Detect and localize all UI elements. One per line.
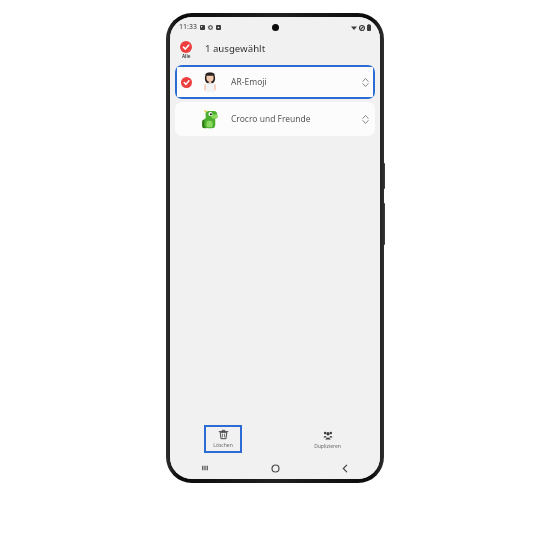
button[interactable]: Crocro und Freunde xyxy=(175,102,375,136)
button[interactable]: Alle auswählen xyxy=(179,41,193,59)
button[interactable]: AR-Emoji xyxy=(175,65,375,99)
staticText: AR-Emoji xyxy=(231,76,267,88)
staticText: 11:33 xyxy=(179,22,197,32)
button[interactable]: Letzte Apps xyxy=(170,457,240,479)
staticText: Alle xyxy=(182,53,191,59)
staticText: Löschen xyxy=(213,442,233,449)
button[interactable]: Duplizieren xyxy=(305,425,350,454)
staticText: 1 ausgewählt xyxy=(205,42,266,55)
staticText: Crocro und Freunde xyxy=(231,113,311,125)
button[interactable]: Löschen xyxy=(204,425,242,453)
button[interactable]: Startbildschirm xyxy=(240,457,310,479)
button[interactable]: Zurück xyxy=(310,457,380,479)
staticText: Duplizieren xyxy=(314,443,341,450)
